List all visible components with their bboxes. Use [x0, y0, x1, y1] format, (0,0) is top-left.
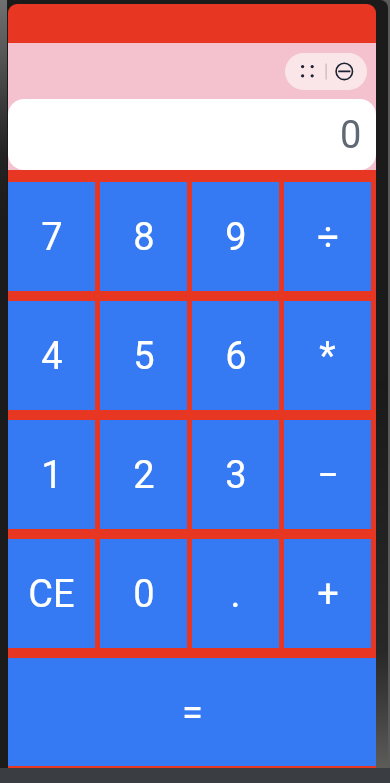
- staticText: 6: [225, 334, 247, 379]
- staticText: 0: [340, 113, 362, 158]
- staticText: −: [317, 453, 339, 498]
- staticText: +: [317, 572, 339, 617]
- button[interactable]: 1: [8, 420, 95, 529]
- staticText: 4: [41, 334, 63, 379]
- button[interactable]: +: [284, 539, 371, 648]
- button[interactable]: −: [284, 420, 371, 529]
- button[interactable]: 8: [100, 182, 187, 291]
- staticText: *: [319, 334, 336, 379]
- button[interactable]: 3: [192, 420, 279, 529]
- button[interactable]: 9: [192, 182, 279, 291]
- button[interactable]: 2: [100, 420, 187, 529]
- staticText: 1: [41, 453, 63, 498]
- button[interactable]: 7: [8, 182, 95, 291]
- staticText: 3: [225, 453, 247, 498]
- button[interactable]: 0: [100, 539, 187, 648]
- staticText: 9: [225, 215, 247, 260]
- staticText: 7: [41, 215, 63, 260]
- staticText: 2: [133, 453, 155, 498]
- staticText: 5: [133, 334, 155, 379]
- button[interactable]: 6: [192, 301, 279, 410]
- staticText: =: [182, 691, 203, 736]
- staticText: ÷: [317, 215, 339, 260]
- button[interactable]: 5: [100, 301, 187, 410]
- button[interactable]: 4: [8, 301, 95, 410]
- staticText: .: [230, 572, 241, 617]
- button[interactable]: *: [284, 301, 371, 410]
- button[interactable]: ÷: [284, 182, 371, 291]
- staticText: CE: [28, 572, 75, 617]
- button[interactable]: =: [8, 658, 376, 766]
- staticText: 8: [133, 215, 155, 260]
- button[interactable]: .: [192, 539, 279, 648]
- button[interactable]: CE: [8, 539, 95, 648]
- button[interactable]: Window controls: [285, 53, 367, 90]
- staticText: 0: [133, 572, 155, 617]
